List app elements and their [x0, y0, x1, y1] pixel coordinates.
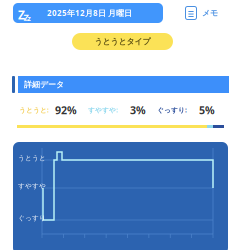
staticText: Z: [23, 11, 28, 23]
staticText: すやすや: [18, 182, 46, 190]
button[interactable]: Z: [13, 3, 163, 23]
staticText: ぐっすり:: [157, 106, 187, 114]
staticText: ぐっすり: [18, 214, 46, 222]
staticText: 3%: [130, 103, 146, 117]
staticText: Z: [18, 7, 25, 23]
button[interactable]: メモ: [185, 3, 220, 23]
staticText: 92%: [55, 103, 77, 117]
staticText: メモ: [202, 8, 218, 18]
staticText: 2025年12月8日 月曜日: [47, 8, 132, 18]
staticText: うとうと:: [19, 106, 49, 114]
staticText: うとうとタイプ: [94, 37, 150, 46]
staticText: z: [27, 14, 30, 23]
staticText: 詳細データ: [24, 80, 64, 89]
staticText: 5%: [199, 103, 215, 117]
staticText: すやすや:: [88, 106, 118, 114]
staticText: うとうと: [18, 154, 46, 162]
